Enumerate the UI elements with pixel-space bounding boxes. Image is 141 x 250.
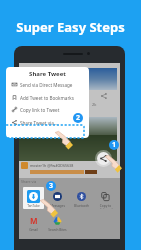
- staticText: Share Tweet via...: [20, 120, 58, 126]
- button[interactable]: Search Bites: [47, 211, 68, 233]
- staticText: TanTube: [27, 204, 40, 208]
- staticText: Super Easy Steps: [0, 18, 141, 36]
- staticText: moster1h @Fw#OD65638: [30, 163, 74, 168]
- staticText: M: [30, 215, 38, 226]
- button[interactable]: Add Tweet to Bookmarks: [6, 91, 89, 104]
- staticText: Send via Direct Message: [20, 82, 73, 88]
- staticText: 2k: [92, 102, 97, 107]
- button[interactable]: Send via Direct Message: [6, 78, 89, 91]
- button[interactable]: Share: [97, 152, 110, 165]
- button[interactable]: TanTube: [23, 187, 44, 209]
- staticText: Add Tweet to Bookmarks: [20, 95, 74, 101]
- staticText: Copy to clipboard: [98, 204, 113, 209]
- button[interactable]: Messages: [47, 187, 68, 209]
- staticText: Bluetooth: [74, 204, 89, 208]
- button[interactable]: M: [23, 211, 44, 233]
- button[interactable]: Copy to clipboard: [95, 187, 116, 209]
- button[interactable]: Bluetooth: [71, 187, 92, 209]
- staticText: Copy link to Tweet: [20, 107, 60, 113]
- staticText: Messages: [50, 204, 65, 208]
- button[interactable]: Share Tweet via...: [6, 116, 89, 129]
- button[interactable]: Copy link to Tweet: [6, 103, 89, 116]
- staticText: 3: [49, 181, 54, 191]
- staticText: Search Bites: [48, 228, 67, 232]
- staticText: Share Tweet: [6, 70, 89, 78]
- staticText: 2: [76, 113, 81, 123]
- staticText: Gmail: [29, 228, 38, 232]
- staticText: 1: [112, 140, 117, 150]
- staticText: Share via: [21, 179, 37, 184]
